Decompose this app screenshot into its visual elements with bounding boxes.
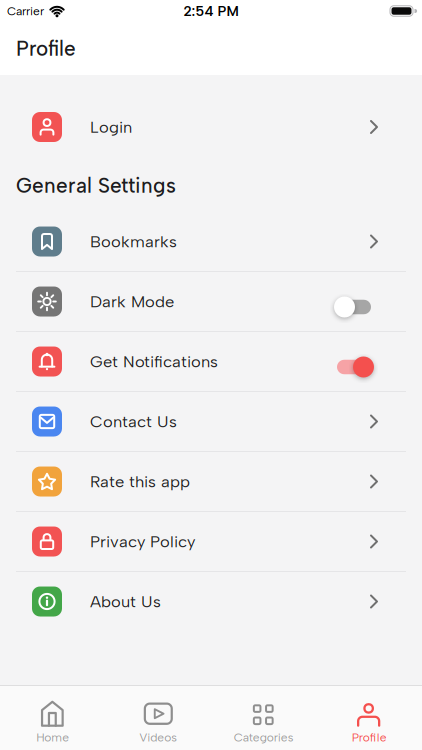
button[interactable]: Videos	[105, 686, 211, 750]
button[interactable]: Contact Us	[0, 392, 422, 451]
staticText: Home	[36, 730, 69, 744]
staticText: 2:54 PM	[183, 3, 238, 19]
staticText: Bookmarks	[90, 232, 177, 251]
button[interactable]: Home	[0, 686, 105, 750]
staticText: Get Notifications	[90, 352, 218, 371]
staticText: Dark Mode	[90, 292, 174, 311]
button[interactable]: Bookmarks	[0, 212, 422, 271]
staticText: Profile	[16, 36, 76, 61]
button[interactable]: Categories	[211, 686, 316, 750]
staticText: About Us	[90, 592, 161, 611]
button[interactable]: About Us	[0, 572, 422, 631]
staticText: Carrier	[7, 4, 44, 18]
button[interactable]: Profile	[316, 686, 422, 750]
button[interactable]: Dark Mode	[0, 272, 422, 331]
staticText: Categories	[234, 730, 294, 744]
button[interactable]: Login	[0, 97, 422, 157]
staticText: Login	[90, 117, 132, 137]
staticText: General Settings	[16, 173, 176, 198]
staticText: Privacy Policy	[90, 532, 195, 551]
button[interactable]: Privacy Policy	[0, 512, 422, 571]
staticText: Profile	[352, 730, 387, 744]
button[interactable]: Rate this app	[0, 452, 422, 511]
button[interactable]: Get Notifications	[0, 332, 422, 391]
staticText: Videos	[139, 730, 177, 744]
staticText: Rate this app	[90, 472, 190, 491]
staticText: Contact Us	[90, 412, 177, 431]
